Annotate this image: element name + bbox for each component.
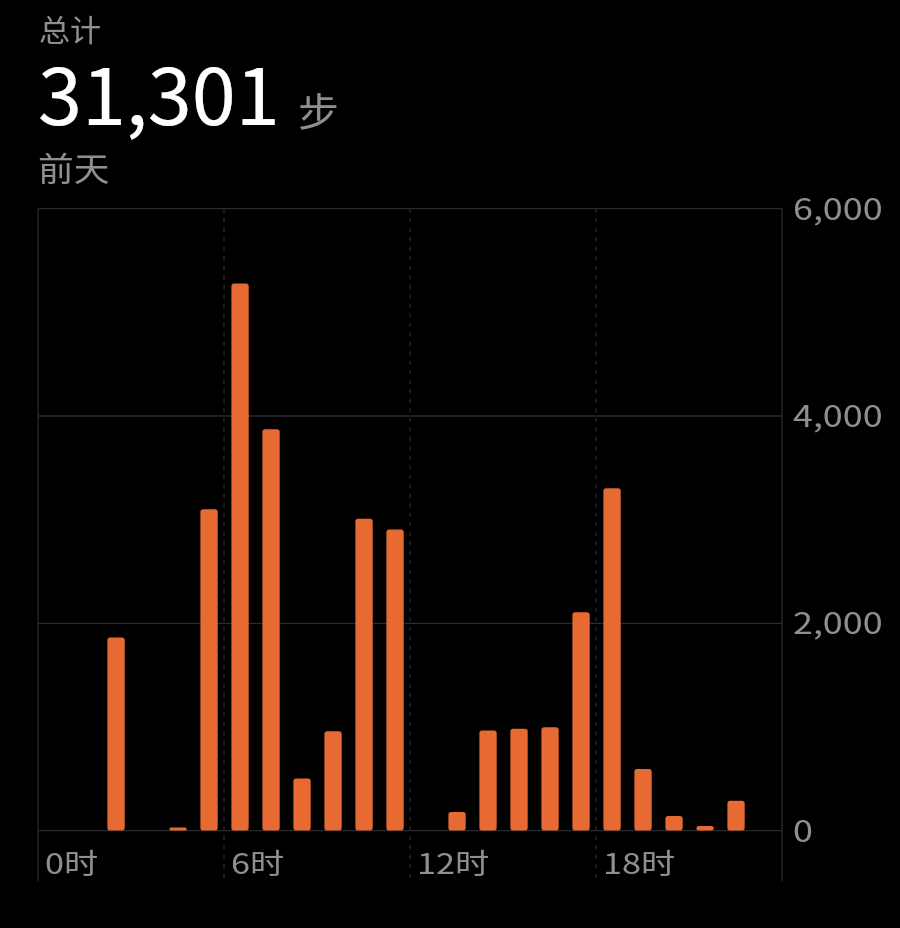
button[interactable]: 总计 31,301 步 前天: [0, 0, 900, 196]
button[interactable]: 每小时步数柱状图: [30, 200, 790, 890]
staticText: 0: [793, 808, 813, 850]
staticText: 步: [298, 81, 340, 137]
staticText: 31,301: [38, 35, 280, 148]
staticText: 前天: [38, 143, 109, 190]
staticText: 0时: [45, 841, 99, 881]
staticText: 6时: [231, 841, 285, 881]
staticText: 4,000: [793, 393, 883, 435]
staticText: 6,000: [793, 186, 883, 228]
staticText: 2,000: [793, 600, 883, 642]
staticText: 18时: [603, 841, 676, 881]
staticText: 12时: [417, 841, 490, 881]
staticText: 总计: [39, 6, 102, 49]
